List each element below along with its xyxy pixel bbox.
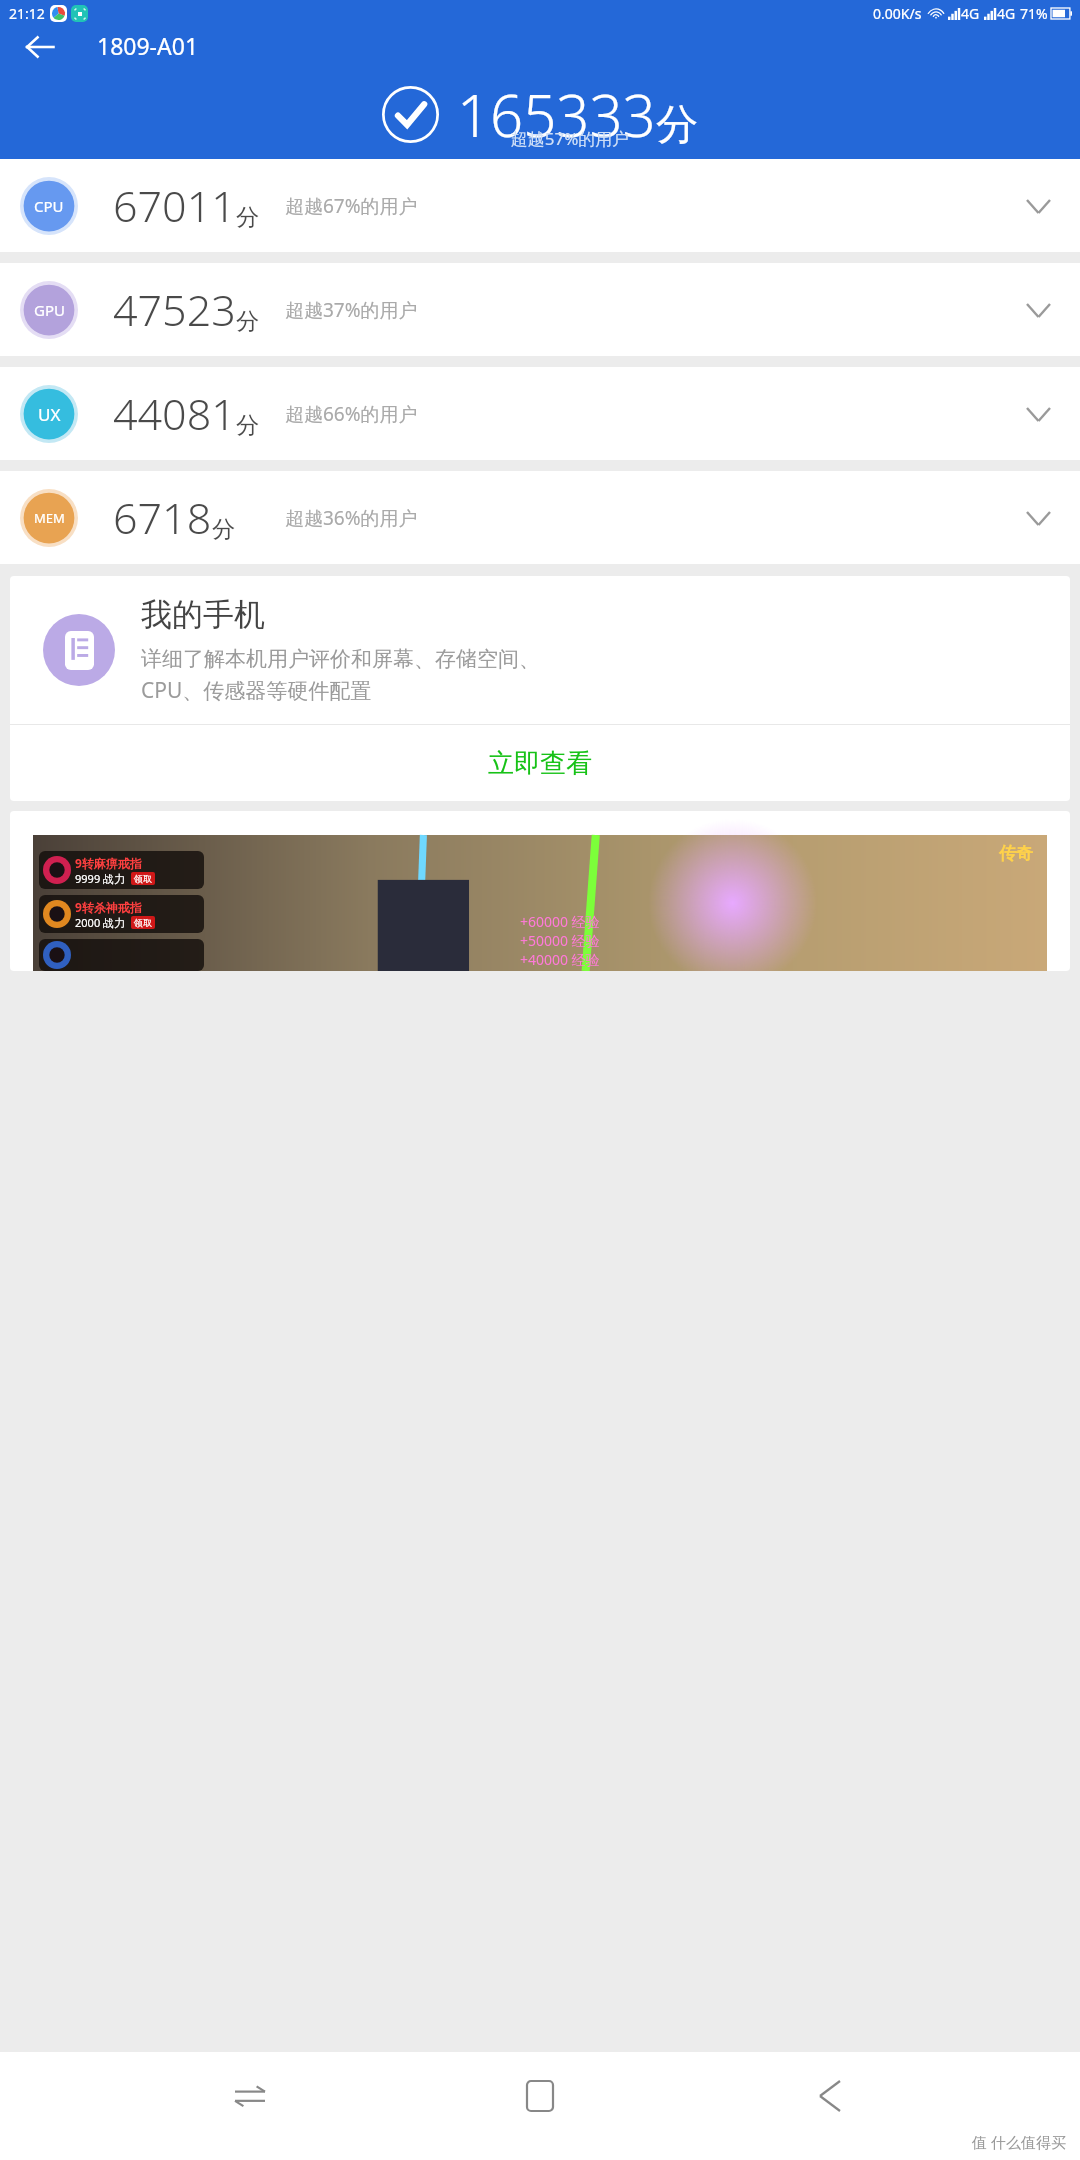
button[interactable]: Recents [210, 2056, 290, 2136]
staticText: 0.00K/s [873, 4, 922, 23]
staticText: 超越66%的用户 [285, 401, 418, 427]
staticText: 67011 [113, 176, 236, 235]
staticText: 9999 战力 [75, 871, 126, 886]
staticText: +50000 经验 [520, 931, 600, 950]
button[interactable]: CPU [0, 159, 1080, 252]
staticText: 传奇 [999, 843, 1033, 864]
button[interactable]: 9转麻痹戒指 [10, 811, 1070, 971]
staticText: 9转杀神戒指 [75, 899, 142, 915]
staticText: 分 [656, 99, 698, 152]
staticText: 9转麻痹戒指 [75, 855, 142, 871]
staticText: 立即查看 [488, 747, 592, 780]
staticText: 详细了解本机用户评价和屏幕、存储空间、 CPU、传感器等硬件配置 [141, 646, 540, 705]
staticText: +40000 经验 [520, 950, 600, 969]
staticText: 超越67%的用户 [285, 193, 418, 219]
staticText: 分 [212, 515, 235, 544]
staticText: 47523 [113, 280, 236, 339]
staticText: UX [38, 403, 61, 426]
staticText: 分 [236, 411, 259, 440]
staticText: 165333 [457, 75, 656, 154]
staticText: 44081 [113, 384, 236, 443]
staticText: 分 [236, 307, 259, 336]
button[interactable]: Home [500, 2056, 580, 2136]
staticText: 超越57%的用户 [60, 127, 1080, 150]
staticText: 71% [1020, 4, 1048, 23]
staticText: 1809-A01 [97, 30, 199, 61]
staticText: 4G [961, 4, 980, 23]
staticText: 4G [997, 4, 1016, 23]
staticText: CPU [34, 196, 64, 216]
staticText: MEM [34, 509, 65, 527]
staticText: 超越37%的用户 [285, 297, 418, 323]
staticText: 超越36%的用户 [285, 505, 418, 531]
staticText: 分 [236, 203, 259, 232]
staticText: +60000 经验 [520, 912, 600, 931]
button[interactable]: GPU [0, 263, 1080, 356]
staticText: 21:12 [9, 4, 45, 23]
staticText: 领取 [134, 917, 152, 928]
button[interactable]: Back [790, 2056, 870, 2136]
button[interactable]: Expand MEM [1008, 488, 1068, 548]
button[interactable]: Expand UX [1008, 384, 1068, 444]
staticText: 我的手机 [141, 595, 265, 634]
staticText: 值 什么值得买 [972, 2132, 1066, 2152]
button[interactable]: MEM [0, 471, 1080, 564]
button[interactable]: 我的手机 [10, 576, 1070, 724]
staticText: GPU [34, 300, 65, 320]
button[interactable]: Back [12, 19, 68, 75]
staticText: 领取 [134, 873, 152, 884]
staticText: 6718 [113, 488, 212, 547]
button[interactable]: UX [0, 367, 1080, 460]
button[interactable]: Expand GPU [1008, 280, 1068, 340]
button[interactable]: 立即查看 [10, 725, 1070, 801]
button[interactable]: Expand CPU [1008, 176, 1068, 236]
staticText: 2000 战力 [75, 915, 126, 930]
